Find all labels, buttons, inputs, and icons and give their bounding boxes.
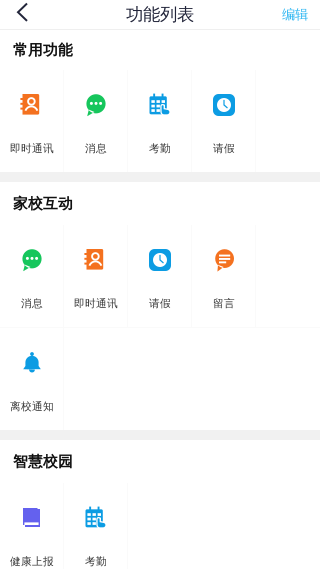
staticText: 常用功能 [13,41,73,59]
button[interactable]: 即时通讯 [0,70,64,172]
button[interactable]: 留言 [192,225,256,327]
staticText: 请假 [149,297,171,310]
staticText: 家校互动 [13,194,73,212]
button[interactable]: 请假 [128,225,192,327]
staticText: 离校通知 [10,400,54,413]
staticText: 编辑 [282,6,308,23]
button[interactable]: 考勤 [128,70,192,172]
staticText: 留言 [213,297,235,310]
button[interactable]: 健康上报 [0,483,64,569]
button[interactable]: Back [0,0,40,28]
button[interactable]: 编辑 [270,0,320,29]
staticText: 即时通讯 [74,297,118,310]
button[interactable]: 请假 [192,70,256,172]
button[interactable]: 消息 [0,225,64,327]
staticText: 功能列表 [126,4,194,25]
staticText: 健康上报 [10,555,54,568]
button[interactable]: 即时通讯 [64,225,128,327]
staticText: 考勤 [149,142,171,155]
staticText: 消息 [21,297,43,310]
staticText: 智慧校园 [13,452,73,470]
button[interactable]: 考勤 [64,483,128,569]
staticText: 考勤 [85,555,107,568]
button[interactable]: 消息 [64,70,128,172]
staticText: 请假 [213,142,235,155]
staticText: 即时通讯 [10,142,54,155]
button[interactable]: 离校通知 [0,328,64,430]
staticText: 消息 [85,142,107,155]
